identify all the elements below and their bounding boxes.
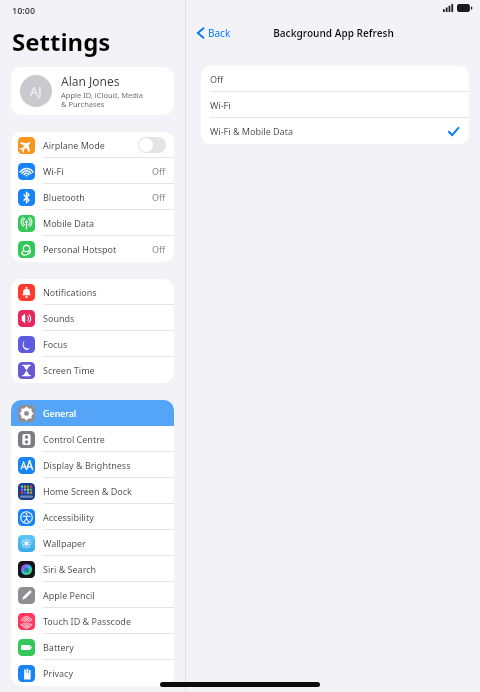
staticText: Apple ID, iCloud, Media & Purchases	[61, 90, 143, 110]
staticText: Settings	[12, 25, 111, 58]
staticText: Wi-Fi	[210, 99, 231, 111]
button[interactable]: Wallpaper	[11, 530, 174, 556]
staticText: Display & Brightness	[43, 459, 131, 471]
staticText: Personal Hotspot	[43, 243, 117, 255]
staticText: Screen Time	[43, 364, 95, 376]
button[interactable]: Wi-Fi	[201, 92, 469, 118]
staticText: 10:00	[12, 4, 36, 16]
button[interactable]: Wi-Fi	[11, 158, 174, 184]
button[interactable]: Mobile Data	[11, 210, 174, 236]
staticText: Touch ID & Passcode	[43, 615, 131, 627]
staticText: Airplane Mode	[43, 139, 105, 151]
button[interactable]: Apple Pencil	[11, 582, 174, 608]
button[interactable]: Personal Hotspot	[11, 236, 174, 262]
button[interactable]: Sounds	[11, 305, 174, 331]
button[interactable]: Privacy	[11, 660, 174, 686]
button[interactable]: Bluetooth	[11, 184, 174, 210]
button[interactable]: General	[11, 400, 174, 426]
button[interactable]: Airplane Mode	[11, 132, 174, 158]
staticText: Battery	[43, 641, 74, 653]
staticText: Notifications	[43, 286, 97, 298]
button[interactable]: Wi-Fi & Mobile Data	[201, 118, 469, 144]
button[interactable]: Siri & Search	[11, 556, 174, 582]
staticText: Background App Refresh	[273, 26, 394, 40]
staticText: Bluetooth	[43, 191, 85, 203]
staticText: Off	[152, 191, 166, 203]
button[interactable]: AJ	[11, 67, 174, 115]
staticText: General	[43, 407, 77, 419]
button[interactable]: Touch ID & Passcode	[11, 608, 174, 634]
button[interactable]: Display & Brightness	[11, 452, 174, 478]
staticText: Accessibility	[43, 511, 94, 523]
button[interactable]: Home Screen & Dock	[11, 478, 174, 504]
staticText: Wallpaper	[43, 537, 86, 549]
button[interactable]: Battery	[11, 634, 174, 660]
staticText: Wi-Fi & Mobile Data	[210, 125, 293, 137]
button[interactable]: Control Centre	[11, 426, 174, 452]
staticText: Off	[152, 243, 166, 255]
staticText: Back	[208, 26, 231, 40]
staticText: Apple Pencil	[43, 589, 95, 601]
button[interactable]: Airplane Mode toggle	[138, 137, 166, 153]
staticText: Focus	[43, 338, 68, 350]
button[interactable]: Focus	[11, 331, 174, 357]
staticText: Off	[210, 73, 224, 85]
staticText: Wi-Fi	[43, 165, 64, 177]
staticText: Home Screen & Dock	[43, 485, 132, 497]
staticText: Alan Jones	[61, 73, 120, 89]
staticText: AJ	[30, 83, 42, 99]
staticText: Mobile Data	[43, 217, 95, 229]
button[interactable]: Notifications	[11, 279, 174, 305]
staticText: Off	[152, 165, 166, 177]
staticText: Control Centre	[43, 433, 105, 445]
staticText: Siri & Search	[43, 563, 97, 575]
staticText: Sounds	[43, 312, 75, 324]
button[interactable]: Accessibility	[11, 504, 174, 530]
staticText: Privacy	[43, 667, 74, 679]
button[interactable]: Off	[201, 66, 469, 92]
button[interactable]: Back	[194, 23, 234, 43]
button[interactable]: Screen Time	[11, 357, 174, 383]
